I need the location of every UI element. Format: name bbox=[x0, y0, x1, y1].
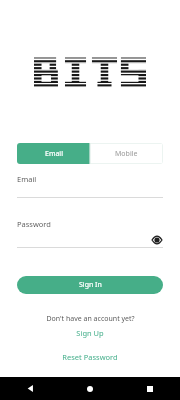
button[interactable]: Mobile bbox=[90, 143, 163, 164]
staticText: Password bbox=[17, 219, 51, 229]
staticText: Don't have an account yet? bbox=[46, 314, 135, 324]
staticText: Sign In bbox=[79, 280, 102, 290]
staticText: Mobile bbox=[115, 149, 138, 159]
button[interactable]: Sign Up bbox=[72, 327, 108, 339]
button[interactable]: Email bbox=[17, 143, 90, 164]
button[interactable]: Reset Password bbox=[58, 351, 122, 363]
button[interactable]: Show password bbox=[150, 233, 163, 246]
button[interactable]: Sign In bbox=[17, 276, 163, 294]
button[interactable]: Recent apps bbox=[120, 377, 180, 400]
staticText: Email bbox=[17, 174, 37, 184]
button[interactable]: Back bbox=[0, 377, 60, 400]
staticText: Reset Password bbox=[62, 352, 118, 362]
staticText: Email bbox=[45, 149, 63, 159]
staticText: Sign Up bbox=[76, 328, 104, 338]
button[interactable]: Home bbox=[60, 377, 120, 400]
